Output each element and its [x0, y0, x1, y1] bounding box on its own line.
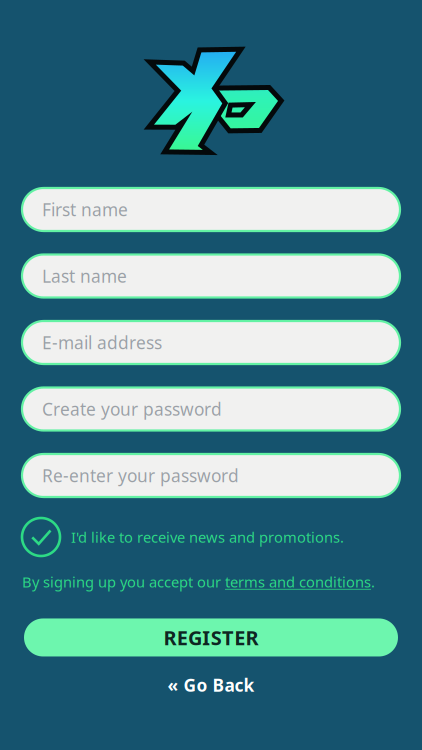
staticText: First name — [42, 198, 128, 221]
button[interactable]: First name — [22, 188, 400, 231]
button[interactable]: « Go Back — [167, 673, 254, 696]
staticText: Last name — [42, 264, 127, 287]
staticText: I'd like to receive news and promotions. — [71, 527, 344, 547]
button[interactable]: E-mail address — [22, 321, 400, 364]
staticText: . — [371, 572, 375, 591]
staticText: By signing up you accept our — [22, 572, 225, 591]
staticText: E-mail address — [42, 331, 162, 354]
button[interactable]: Re-enter your password — [22, 454, 400, 497]
staticText: terms and conditions — [225, 572, 371, 591]
staticText: Re-enter your password — [42, 464, 239, 487]
button[interactable]: Last name — [22, 254, 400, 297]
button[interactable]: REGISTER — [24, 618, 398, 656]
button[interactable]: I'd like to receive news and promotions. — [0, 518, 422, 556]
button[interactable]: Create your password — [22, 387, 400, 430]
staticText: « Go Back — [167, 673, 254, 696]
staticText: REGISTER — [163, 624, 259, 651]
staticText: Create your password — [42, 397, 222, 420]
